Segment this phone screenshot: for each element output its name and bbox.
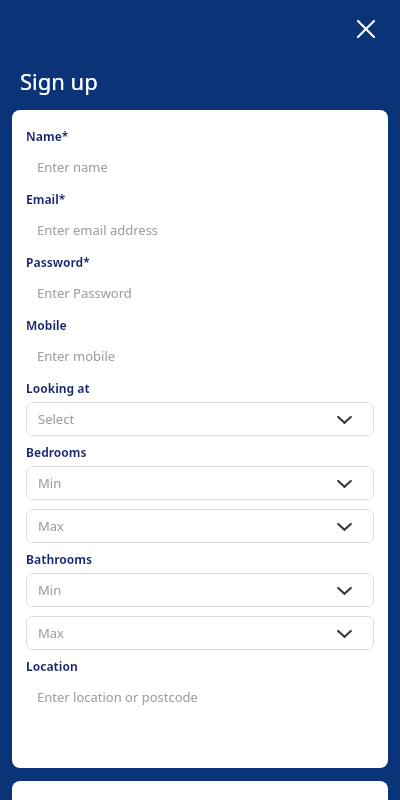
staticText: Bedrooms	[26, 444, 87, 460]
staticText: Sign up	[20, 66, 98, 96]
button[interactable]	[12, 781, 388, 800]
staticText: Looking at	[26, 380, 90, 396]
staticText: Min	[38, 474, 62, 492]
staticText: Mobile	[26, 317, 67, 333]
staticText: Email*	[26, 191, 66, 207]
staticText: Password*	[26, 254, 90, 270]
staticText: Bathrooms	[26, 551, 93, 567]
staticText: Max	[38, 517, 64, 535]
button[interactable]: Enter email address	[26, 213, 374, 247]
button[interactable]: Select	[26, 402, 374, 436]
staticText: Location	[26, 658, 78, 674]
button[interactable]: Min	[26, 466, 374, 500]
staticText: Enter location or postcode	[37, 688, 198, 706]
staticText: Enter email address	[37, 221, 159, 239]
button[interactable]: Enter mobile	[26, 339, 374, 373]
button[interactable]: Max	[26, 616, 374, 650]
staticText: Name*	[26, 128, 69, 144]
staticText: Enter Password	[37, 284, 132, 302]
staticText: Select	[38, 410, 75, 428]
staticText: Enter mobile	[37, 347, 116, 365]
button[interactable]: Enter Password	[26, 276, 374, 310]
staticText: Max	[38, 624, 64, 642]
button[interactable]: Max	[26, 509, 374, 543]
button[interactable]: Enter name	[26, 150, 374, 184]
staticText: Min	[38, 581, 62, 599]
button[interactable]: Close	[348, 11, 384, 47]
staticText: Enter name	[37, 158, 108, 176]
button[interactable]: Min	[26, 573, 374, 607]
button[interactable]: Enter location or postcode	[26, 680, 374, 714]
